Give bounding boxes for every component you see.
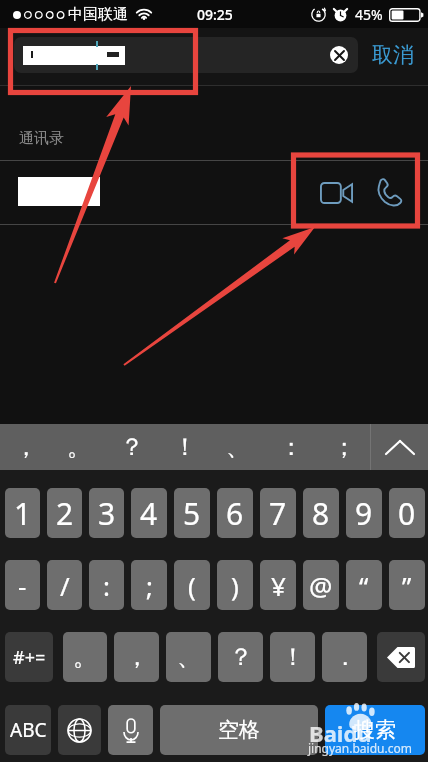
staticText: Baidu — [309, 718, 372, 748]
staticText: 8 — [312, 493, 330, 534]
staticText: ; — [146, 568, 153, 603]
button[interactable]: ” — [389, 560, 425, 610]
staticText: 6 — [226, 493, 244, 534]
button[interactable]: Clear — [14, 37, 358, 73]
button[interactable]: 9 — [346, 488, 382, 538]
button[interactable]: 、 — [211, 424, 264, 470]
button[interactable]: ( — [174, 560, 210, 610]
staticText: / — [60, 568, 70, 603]
button[interactable]: ， — [0, 424, 52, 470]
staticText: 、 — [226, 432, 250, 462]
staticText: 取消 — [372, 42, 414, 68]
staticText: 9 — [355, 493, 373, 534]
staticText: ！ — [173, 432, 197, 462]
staticText: ： — [279, 432, 303, 462]
staticText: 1 — [14, 493, 32, 534]
button[interactable]: ; — [131, 560, 167, 610]
staticText: 4 — [140, 493, 158, 534]
staticText: ； — [332, 432, 356, 462]
button[interactable]: 8 — [303, 488, 339, 538]
staticText: - — [18, 568, 27, 603]
staticText: @ — [309, 568, 333, 603]
button[interactable]: 5 — [174, 488, 210, 538]
staticText: ？ — [229, 642, 253, 672]
staticText: ！ — [281, 642, 305, 672]
staticText: ． — [333, 642, 357, 672]
button[interactable]: ： — [264, 424, 317, 470]
staticText: ， — [14, 432, 38, 462]
staticText: 通讯录 — [19, 129, 64, 148]
button[interactable]: ) — [217, 560, 253, 610]
button[interactable]: Video call — [316, 171, 360, 215]
button[interactable]: Switch language — [58, 705, 101, 755]
button[interactable]: ！ — [270, 632, 315, 682]
button[interactable]: 。 — [52, 424, 105, 470]
staticText: 2 — [56, 493, 74, 534]
staticText: 。 — [67, 432, 91, 462]
button[interactable]: : — [89, 560, 124, 610]
button[interactable]: 取消 — [364, 37, 422, 73]
button[interactable]: ； — [317, 424, 370, 470]
button[interactable]: “ — [346, 560, 382, 610]
button[interactable]: Clear — [330, 46, 348, 64]
staticText: 搜索 — [354, 717, 396, 743]
button[interactable]: ， — [114, 632, 159, 682]
staticText: 09:25 — [197, 5, 233, 24]
button[interactable]: ？ — [105, 424, 158, 470]
button[interactable]: 。 — [63, 632, 107, 682]
staticText: 7 — [269, 493, 287, 534]
button[interactable]: 空格 — [160, 705, 318, 755]
button[interactable]: 1 — [5, 488, 40, 538]
staticText: 45% — [355, 5, 383, 24]
button[interactable]: 2 — [47, 488, 82, 538]
staticText: : — [103, 568, 110, 603]
staticText: 、 — [177, 642, 201, 672]
staticText: ABC — [10, 717, 47, 743]
button[interactable]: ． — [322, 632, 367, 682]
button[interactable]: Backspace — [377, 632, 425, 682]
staticText: #+= — [13, 645, 46, 670]
staticText: 5 — [183, 493, 201, 534]
staticText: ¥ — [271, 568, 286, 603]
button[interactable]: 3 — [89, 488, 124, 538]
button[interactable]: 搜索 — [325, 705, 425, 755]
button[interactable]: ¥ — [260, 560, 296, 610]
button[interactable]: Call — [370, 171, 414, 215]
staticText: ， — [125, 642, 149, 672]
button[interactable]: Hide keyboard — [371, 424, 428, 470]
staticText: ( — [188, 568, 196, 603]
button[interactable]: Video call — [0, 161, 428, 224]
staticText: 。 — [73, 642, 97, 672]
button[interactable]: ？ — [218, 632, 263, 682]
staticText: ” — [402, 568, 412, 603]
staticText: ) — [231, 568, 239, 603]
staticText: “ — [359, 568, 369, 603]
staticText: 3 — [98, 493, 116, 534]
button[interactable]: / — [47, 560, 82, 610]
button[interactable]: ABC — [5, 705, 51, 755]
button[interactable]: 、 — [166, 632, 211, 682]
staticText: jingyan.baidu.com — [308, 740, 412, 756]
button[interactable]: 4 — [131, 488, 167, 538]
button[interactable]: #+= — [5, 632, 53, 682]
button[interactable]: 7 — [260, 488, 296, 538]
staticText: 0 — [398, 493, 416, 534]
staticText: 空格 — [218, 717, 260, 743]
button[interactable]: 6 — [217, 488, 253, 538]
button[interactable]: Voice input — [108, 705, 153, 755]
button[interactable]: ！ — [158, 424, 211, 470]
button[interactable]: - — [5, 560, 40, 610]
staticText: 中国联通 — [68, 5, 128, 24]
button[interactable]: @ — [303, 560, 339, 610]
staticText: ？ — [120, 432, 144, 462]
button[interactable]: 0 — [389, 488, 425, 538]
